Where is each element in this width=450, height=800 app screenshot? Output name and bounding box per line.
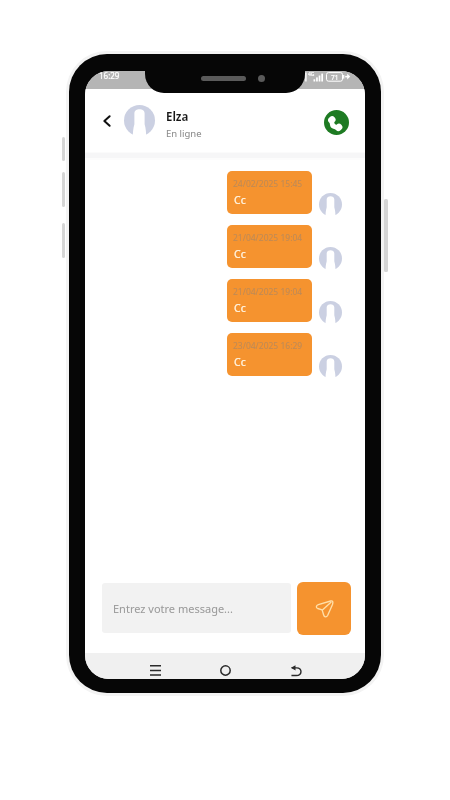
staticText: En ligne <box>166 127 202 140</box>
staticText: 24/02/2025 15:45 <box>233 178 303 190</box>
button[interactable]: 24/02/2025 15:45 <box>227 171 312 214</box>
staticText: Cc <box>234 193 246 207</box>
button[interactable]: Recent apps <box>141 657 169 679</box>
staticText: Entrez votre message... <box>113 601 233 616</box>
staticText: 16:29 <box>99 71 120 81</box>
staticText: 4G <box>308 71 315 78</box>
staticText: Cc <box>234 301 246 315</box>
button[interactable]: Back <box>98 112 116 130</box>
staticText: Cc <box>234 247 246 261</box>
button[interactable]: 21/04/2025 19:04 <box>227 225 312 268</box>
staticText: 71 <box>331 73 339 82</box>
staticText: 21/04/2025 19:04 <box>233 286 303 298</box>
button[interactable]: Call <box>324 110 349 135</box>
staticText: 23/04/2025 16:29 <box>233 340 303 352</box>
button[interactable]: Back <box>282 657 310 679</box>
button[interactable]: 21/04/2025 19:04 <box>227 279 312 322</box>
button[interactable]: Home <box>211 657 239 679</box>
button[interactable]: Send <box>297 582 351 635</box>
button[interactable]: 23/04/2025 16:29 <box>227 333 312 376</box>
staticText: 21/04/2025 19:04 <box>233 232 303 244</box>
staticText: Cc <box>234 355 246 369</box>
staticText: Elza <box>166 109 189 125</box>
button[interactable]: Entrez votre message... <box>102 583 291 633</box>
